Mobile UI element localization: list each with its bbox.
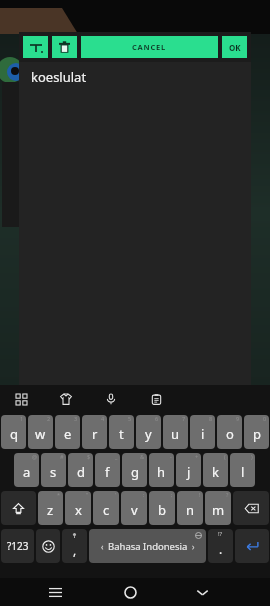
button[interactable]: + <box>176 453 201 487</box>
button[interactable]: 2 <box>28 415 53 449</box>
staticText: a <box>23 463 31 481</box>
staticText: m <box>212 501 225 519</box>
staticText: ‹ <box>101 541 104 552</box>
button[interactable]: Recents <box>40 578 70 606</box>
staticText: c <box>103 501 110 519</box>
staticText: . <box>219 541 223 557</box>
button[interactable]: ; <box>149 491 175 525</box>
staticText: CANCEL <box>132 42 167 52</box>
staticText: # <box>60 453 64 460</box>
staticText: g <box>131 463 139 481</box>
staticText: k <box>212 463 219 481</box>
button[interactable]: " <box>65 491 91 525</box>
button[interactable]: Voice input <box>100 388 122 410</box>
button[interactable]: # <box>41 453 66 487</box>
staticText: f <box>105 463 110 481</box>
staticText: o <box>226 425 234 443</box>
staticText: 5 <box>128 415 132 422</box>
button[interactable]: 7 <box>163 415 188 449</box>
staticText: s <box>50 463 57 481</box>
button[interactable]: : <box>121 491 147 525</box>
staticText: , <box>73 542 77 558</box>
button[interactable]: @ <box>14 453 39 487</box>
staticText: $ <box>87 453 91 460</box>
staticText: h <box>157 463 166 481</box>
staticText: d <box>77 463 85 481</box>
button[interactable]: 4 <box>82 415 107 449</box>
button[interactable]: OK <box>222 36 247 58</box>
staticText: 0 <box>263 415 267 422</box>
staticText: - <box>170 453 172 460</box>
staticText: 9 <box>236 415 240 422</box>
button[interactable]: CANCEL <box>81 36 218 58</box>
staticText: r <box>92 425 98 443</box>
button[interactable]: 1 <box>1 415 26 449</box>
staticText: z <box>47 501 54 519</box>
staticText: : <box>143 491 145 498</box>
staticText: y <box>145 425 152 443</box>
button[interactable]: Home <box>115 578 145 606</box>
button[interactable]: 8 <box>190 415 215 449</box>
staticText: n <box>186 501 195 519</box>
button[interactable]: - <box>149 453 174 487</box>
staticText: l <box>241 463 245 481</box>
button[interactable]: ?123 <box>1 529 34 563</box>
button[interactable]: Text style <box>23 36 48 58</box>
button[interactable]: , <box>62 529 87 563</box>
staticText: v <box>131 501 138 519</box>
staticText: @ <box>32 453 37 460</box>
button[interactable]: ) <box>230 453 255 487</box>
staticText: u <box>171 425 180 443</box>
button[interactable]: ( <box>203 453 228 487</box>
button[interactable]: 6 <box>136 415 161 449</box>
button[interactable]: !? <box>208 529 233 563</box>
button[interactable]: 3 <box>55 415 80 449</box>
staticText: 3 <box>74 415 78 422</box>
staticText: q <box>10 425 18 443</box>
staticText: ?123 <box>7 539 29 553</box>
staticText: * <box>57 491 61 498</box>
staticText: e <box>64 425 72 443</box>
staticText: & <box>140 453 145 460</box>
button[interactable]: ' <box>93 491 119 525</box>
staticText: j <box>187 463 191 481</box>
staticText: " <box>86 491 89 498</box>
button[interactable]: & <box>122 453 147 487</box>
staticText: 7 <box>182 415 186 422</box>
staticText: b <box>158 501 166 519</box>
button[interactable]: Emoji <box>36 529 60 563</box>
button[interactable]: 9 <box>217 415 242 449</box>
staticText: Bahasa Indonesia <box>108 540 188 553</box>
staticText: x <box>75 501 82 519</box>
staticText: ' <box>115 491 117 498</box>
button[interactable]: Shift <box>1 491 36 525</box>
button[interactable]: Stickers <box>55 388 77 410</box>
button[interactable]: Delete <box>52 36 77 58</box>
button[interactable]: ‹ <box>89 529 206 563</box>
button[interactable]: Clipboard <box>145 388 167 410</box>
staticText: _ <box>115 453 118 460</box>
staticText: p <box>253 425 261 443</box>
button[interactable]: ! <box>177 491 203 525</box>
staticText: ( <box>224 453 226 460</box>
button[interactable]: Backspace <box>233 491 269 525</box>
staticText: ; <box>171 491 173 498</box>
button[interactable]: Enter <box>235 529 269 563</box>
button[interactable]: ? <box>205 491 231 525</box>
button[interactable]: 0 <box>244 415 269 449</box>
button[interactable]: 5 <box>109 415 134 449</box>
staticText: w <box>35 425 46 443</box>
staticText: !? <box>218 530 223 538</box>
staticText: › <box>192 541 195 552</box>
staticText: 6 <box>155 415 159 422</box>
button[interactable]: Hide keyboard <box>187 578 217 606</box>
staticText: 1 <box>20 415 24 422</box>
button[interactable]: Apps <box>10 388 32 410</box>
staticText: koeslulat <box>31 68 87 86</box>
staticText: ) <box>251 453 253 460</box>
staticText: ? <box>226 491 229 498</box>
button[interactable]: $ <box>68 453 93 487</box>
staticText: 8 <box>209 415 213 422</box>
button[interactable]: _ <box>95 453 120 487</box>
button[interactable]: * <box>38 491 63 525</box>
